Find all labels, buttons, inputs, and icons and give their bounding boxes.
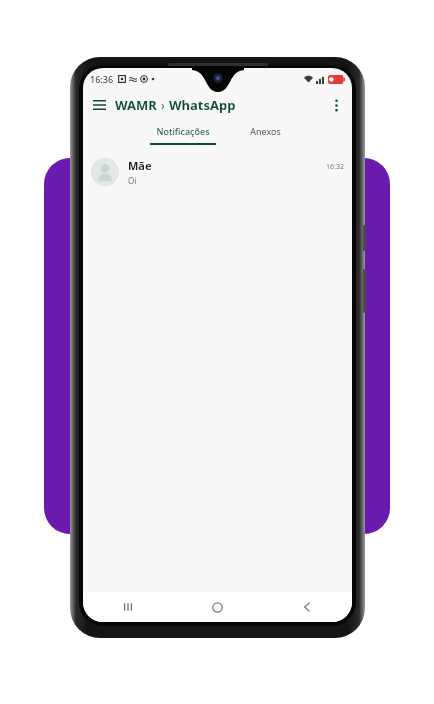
button[interactable]: More options [325, 94, 347, 116]
staticText: › [161, 97, 165, 113]
staticText: Anexos [250, 125, 281, 137]
button[interactable]: Home [172, 592, 262, 622]
staticText: 16:32 [326, 162, 344, 172]
button[interactable]: Notificações [141, 120, 225, 150]
button[interactable]: Back [262, 592, 352, 622]
staticText: Notificações [156, 125, 210, 137]
button[interactable]: Open navigation drawer [88, 94, 110, 116]
staticText: 16:36 [90, 73, 114, 85]
staticText: Oi [128, 175, 137, 186]
button[interactable]: Mãe [83, 150, 352, 194]
staticText: Mãe [128, 158, 152, 173]
button[interactable]: Recent apps [83, 592, 172, 622]
staticText: WhatsApp [169, 96, 236, 114]
button[interactable]: WAMR [115, 96, 236, 114]
staticText: WAMR [115, 96, 157, 114]
button[interactable]: Anexos [235, 120, 295, 150]
